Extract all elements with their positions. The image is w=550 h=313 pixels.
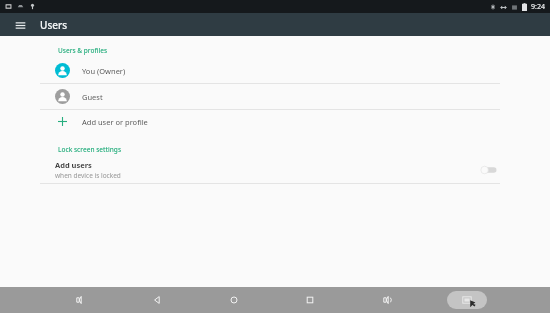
button[interactable]: Volume up: [370, 289, 404, 311]
button[interactable]: Volume down: [63, 289, 97, 311]
staticText: Users: [40, 18, 68, 32]
button[interactable]: Add users: [0, 157, 550, 183]
button[interactable]: Add user or profile: [0, 110, 550, 133]
staticText: 9:24: [531, 2, 545, 12]
staticText: Users & profiles: [58, 46, 108, 55]
button[interactable]: Screenshot: [447, 291, 487, 309]
button[interactable]: Recent apps: [293, 289, 327, 311]
staticText: Guest: [82, 92, 103, 102]
staticText: Lock screen settings: [58, 145, 122, 154]
button[interactable]: You (Owner): [0, 58, 550, 83]
staticText: when device is locked: [55, 171, 121, 180]
staticText: Add users: [55, 160, 92, 170]
staticText: You (Owner): [82, 66, 126, 76]
button[interactable]: Home: [217, 289, 251, 311]
button[interactable]: Open navigation menu: [10, 15, 30, 35]
button[interactable]: Back: [140, 289, 174, 311]
button[interactable]: Guest: [0, 84, 550, 109]
staticText: Add user or profile: [82, 117, 148, 127]
button[interactable]: Add users when device is locked toggle: [478, 163, 500, 177]
